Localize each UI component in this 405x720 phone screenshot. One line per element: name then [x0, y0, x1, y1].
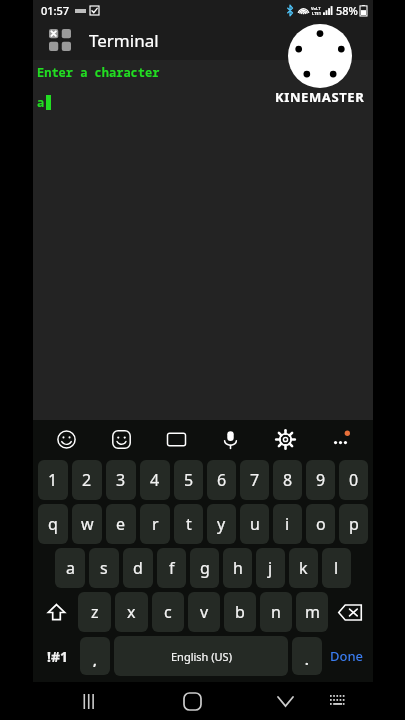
- button[interactable]: 6: [207, 460, 236, 500]
- staticText: .: [305, 651, 309, 669]
- staticText: 5: [184, 469, 194, 491]
- staticText: 2: [82, 469, 92, 491]
- button[interactable]: o: [306, 504, 335, 544]
- staticText: 3: [116, 469, 126, 491]
- staticText: 7: [250, 469, 260, 491]
- button[interactable]: e: [106, 504, 136, 544]
- staticText: e: [116, 513, 126, 535]
- button[interactable]: 2: [72, 460, 102, 500]
- staticText: y: [217, 513, 226, 535]
- staticText: b: [235, 601, 245, 623]
- staticText: a: [37, 94, 45, 110]
- staticText: !#1: [47, 647, 68, 666]
- staticText: f: [169, 557, 175, 579]
- staticText: VoLT: [311, 6, 321, 11]
- button[interactable]: u: [240, 504, 269, 544]
- staticText: m: [305, 601, 320, 623]
- staticText: 4: [150, 469, 160, 491]
- staticText: 6: [217, 469, 227, 491]
- staticText: t: [186, 513, 192, 535]
- button[interactable]: m: [296, 592, 328, 632]
- staticText: i: [285, 513, 290, 535]
- staticText: Enter a character: [37, 64, 160, 80]
- button[interactable]: i: [273, 504, 302, 544]
- staticText: w: [81, 513, 94, 535]
- button[interactable]: !#1: [36, 636, 78, 676]
- button[interactable]: h: [223, 548, 252, 588]
- button[interactable]: Hide keyboard: [265, 682, 305, 720]
- button[interactable]: q: [38, 504, 68, 544]
- staticText: c: [164, 601, 172, 623]
- button[interactable]: Voice input: [215, 424, 245, 454]
- button[interactable]: 5: [174, 460, 203, 500]
- button[interactable]: l: [322, 548, 351, 588]
- staticText: n: [271, 601, 281, 623]
- staticText: j: [268, 557, 273, 579]
- staticText: English (US): [171, 649, 232, 664]
- button[interactable]: 4: [140, 460, 170, 500]
- button[interactable]: 7: [240, 460, 269, 500]
- staticText: d: [133, 557, 143, 579]
- staticText: Done: [330, 647, 364, 665]
- button[interactable]: d: [123, 548, 153, 588]
- button[interactable]: k: [289, 548, 318, 588]
- button[interactable]: More options: [325, 424, 355, 454]
- button[interactable]: z: [78, 592, 111, 632]
- button[interactable]: Switch keyboard: [318, 682, 358, 720]
- button[interactable]: 0: [339, 460, 368, 500]
- button[interactable]: b: [224, 592, 256, 632]
- staticText: u: [250, 513, 260, 535]
- staticText: 0: [349, 469, 359, 491]
- button[interactable]: ,: [80, 637, 110, 675]
- staticText: ,: [93, 651, 97, 669]
- button[interactable]: 1: [38, 460, 68, 500]
- button[interactable]: Stickers: [106, 424, 136, 454]
- button[interactable]: Shift: [36, 590, 76, 634]
- button[interactable]: Recent apps: [66, 682, 110, 720]
- button[interactable]: 8: [273, 460, 302, 500]
- staticText: 01:57: [41, 3, 70, 18]
- staticText: Terminal: [89, 29, 159, 52]
- button[interactable]: Terminal app icon: [45, 25, 75, 55]
- staticText: x: [127, 601, 136, 623]
- button[interactable]: c: [152, 592, 184, 632]
- button[interactable]: v: [188, 592, 220, 632]
- button[interactable]: .: [292, 637, 322, 675]
- staticText: 1: [48, 469, 58, 491]
- staticText: h: [233, 557, 243, 579]
- button[interactable]: g: [190, 548, 219, 588]
- button[interactable]: a: [55, 548, 85, 588]
- staticText: 9: [316, 469, 326, 491]
- button[interactable]: 3: [106, 460, 136, 500]
- button[interactable]: Keyboard settings: [270, 424, 300, 454]
- button[interactable]: p: [339, 504, 368, 544]
- button[interactable]: y: [207, 504, 236, 544]
- button[interactable]: s: [89, 548, 119, 588]
- button[interactable]: n: [260, 592, 292, 632]
- button[interactable]: Backspace: [330, 590, 370, 634]
- button[interactable]: Home: [170, 682, 214, 720]
- staticText: v: [200, 601, 209, 623]
- staticText: 58%: [336, 3, 358, 18]
- staticText: k: [299, 557, 308, 579]
- button[interactable]: Emoji: [51, 424, 81, 454]
- button[interactable]: f: [157, 548, 186, 588]
- button[interactable]: t: [174, 504, 203, 544]
- button[interactable]: j: [256, 548, 285, 588]
- button[interactable]: 9: [306, 460, 335, 500]
- button[interactable]: Done: [324, 636, 370, 676]
- button[interactable]: x: [115, 592, 148, 632]
- staticText: s: [100, 557, 108, 579]
- button[interactable]: w: [72, 504, 102, 544]
- button[interactable]: English (US): [114, 636, 288, 676]
- staticText: l: [334, 557, 339, 579]
- staticText: q: [48, 513, 58, 535]
- button[interactable]: GIF: [161, 424, 191, 454]
- staticText: r: [152, 513, 159, 535]
- staticText: 8: [283, 469, 293, 491]
- staticText: a: [66, 557, 75, 579]
- staticText: KINEMASTER: [275, 88, 365, 106]
- button[interactable]: r: [140, 504, 170, 544]
- staticText: p: [349, 513, 359, 535]
- staticText: o: [316, 513, 326, 535]
